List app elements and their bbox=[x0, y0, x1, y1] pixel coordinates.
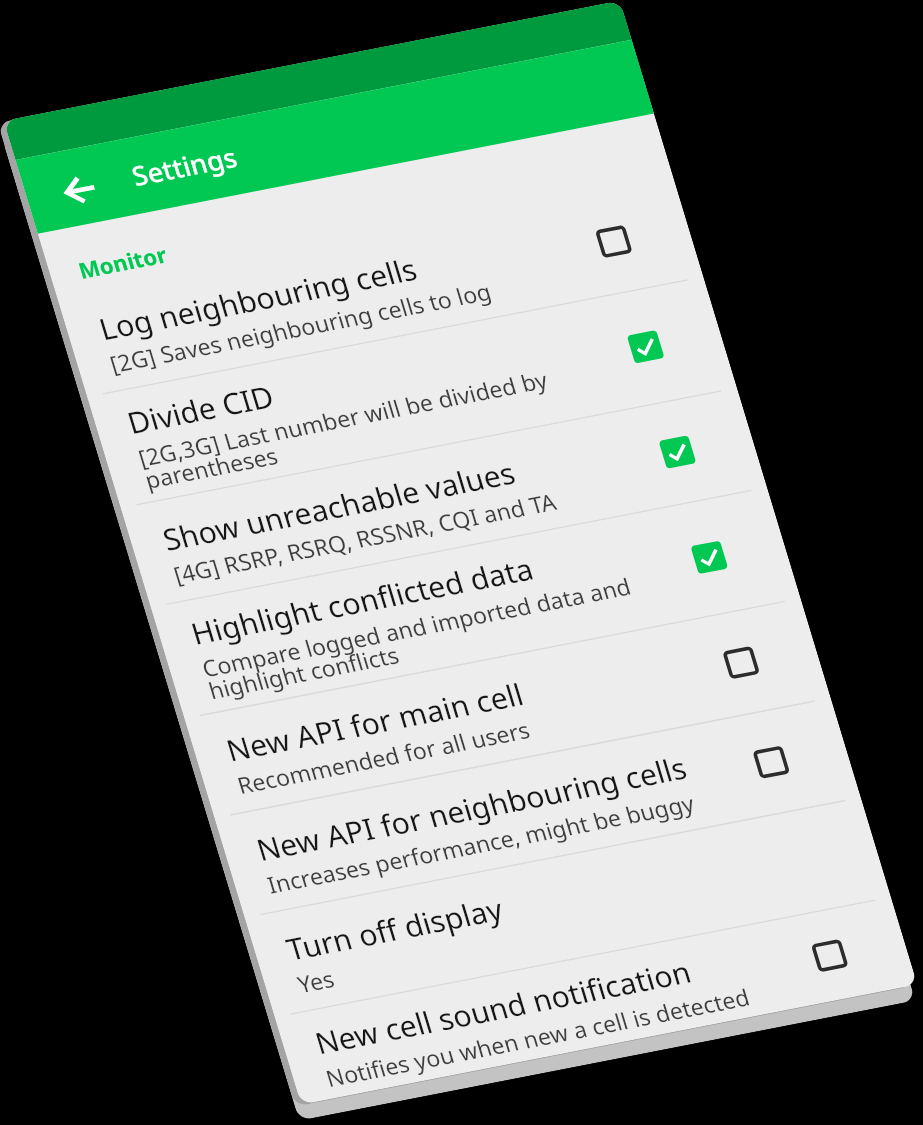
button[interactable]: New API for neighbouring cells bbox=[0, 728, 628, 832]
button[interactable]: New cell sound notification bbox=[530, 960, 574, 1004]
button[interactable]: Turn off display bbox=[0, 832, 628, 936]
staticText: Compare logged and imported data and hig… bbox=[32, 563, 468, 618]
button[interactable]: Navigate up bbox=[0, 41, 108, 118]
staticText: [2G] Saves neighbouring cells to log bbox=[32, 245, 419, 276]
button[interactable]: Highlight conflicted data bbox=[0, 508, 628, 624]
staticText: Increases performance, might be buggy bbox=[32, 789, 466, 820]
staticText: Divide CID bbox=[32, 302, 179, 343]
staticText: [4G] RSRP, RSRQ, RSSNR, CQI and TA bbox=[32, 465, 421, 496]
staticText: Recommended for all users bbox=[32, 685, 329, 716]
staticText: Settings bbox=[108, 61, 214, 98]
button[interactable]: New API for neighbouring cells bbox=[530, 758, 574, 802]
button[interactable]: New cell sound notification bbox=[0, 936, 628, 1028]
button[interactable]: Divide CID bbox=[0, 288, 628, 404]
staticText: New API for neighbouring cells bbox=[32, 748, 468, 789]
staticText: Turn off display bbox=[32, 852, 250, 893]
staticText: Highlight conflicted data bbox=[32, 522, 379, 563]
staticText: Notifies you when new a cell is detected bbox=[32, 991, 463, 1022]
staticText: [2G,3G] Last number will be divided by p… bbox=[32, 343, 448, 398]
button[interactable]: Log neighbouring cells bbox=[0, 184, 628, 288]
staticText: Show unreachable values bbox=[32, 424, 389, 465]
staticText: New API for main cell bbox=[32, 644, 333, 685]
staticText: New cell sound notification bbox=[32, 950, 413, 991]
button[interactable]: Highlight conflicted data bbox=[530, 544, 574, 588]
staticText: Log neighbouring cells bbox=[32, 204, 354, 245]
button[interactable]: New API for main cell bbox=[0, 624, 628, 728]
button[interactable]: Show unreachable values bbox=[0, 404, 628, 508]
staticText: Monitor bbox=[29, 147, 118, 177]
